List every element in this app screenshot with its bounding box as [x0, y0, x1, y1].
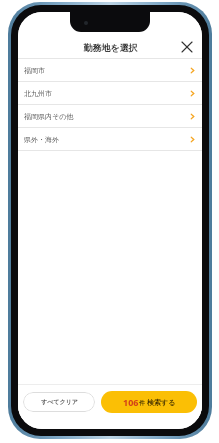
staticText: 106 — [123, 396, 139, 408]
button[interactable]: 福岡市 — [18, 59, 202, 81]
staticText: 勤務地を選択 — [83, 42, 138, 53]
staticText: 福岡市 — [24, 66, 45, 75]
staticText: 件 — [139, 399, 145, 407]
button[interactable]: 北九州市 — [18, 82, 202, 104]
staticText: 福岡県内その他 — [24, 112, 74, 121]
button[interactable]: すべてクリア — [23, 392, 95, 412]
staticText: 県外・海外 — [24, 135, 59, 144]
staticText: 北九州市 — [24, 89, 52, 98]
staticText: すべてクリア — [41, 398, 78, 406]
staticText: 検索する — [147, 398, 176, 407]
button[interactable]: 106 — [101, 391, 197, 413]
button[interactable]: 福岡県内その他 — [18, 105, 202, 127]
button[interactable]: Close — [178, 38, 196, 56]
button[interactable]: 県外・海外 — [18, 128, 202, 150]
